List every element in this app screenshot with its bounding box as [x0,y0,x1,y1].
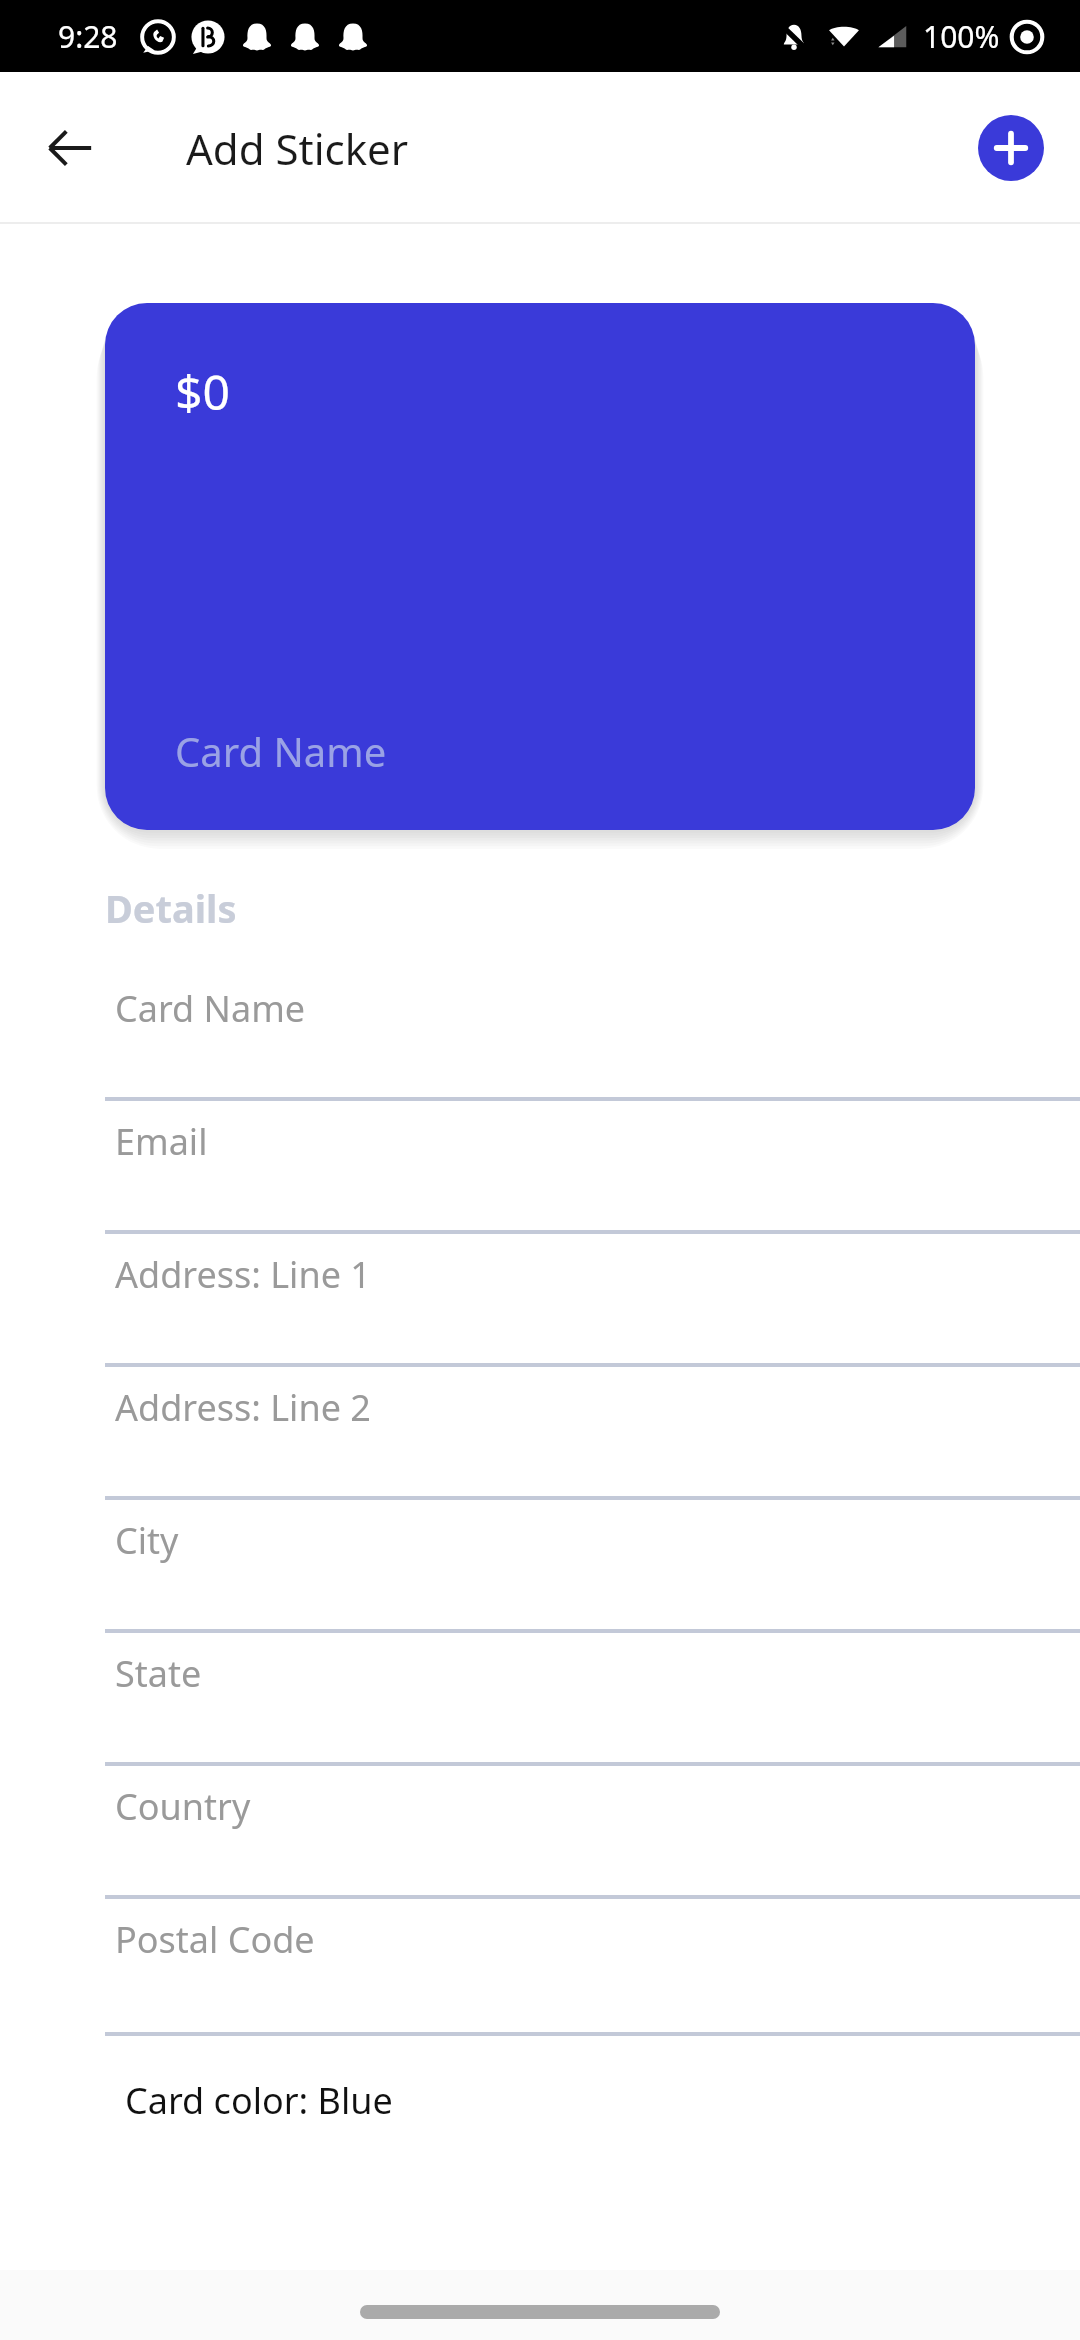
staticText: 9:28 [58,16,118,57]
staticText: $0 [175,359,230,424]
staticText: Address: Line 2 [115,1383,371,1432]
staticText: Card Name [115,984,306,1033]
button[interactable]: Add [978,115,1044,181]
button[interactable]: Card Name [0,968,1080,1101]
button[interactable]: State [0,1633,1080,1766]
button[interactable]: Card color: Blue [125,2076,393,2125]
staticText: State [115,1649,202,1698]
button[interactable]: Address: Line 2 [0,1367,1080,1500]
button[interactable]: City [0,1500,1080,1633]
staticText: Postal Code [115,1915,315,1964]
button[interactable]: Email [0,1101,1080,1234]
staticText: Add Sticker [186,120,409,177]
staticText: 100% [923,16,1000,57]
button[interactable]: Country [0,1766,1080,1899]
staticText: City [115,1516,179,1565]
staticText: Email [115,1117,208,1166]
staticText: Address: Line 1 [115,1250,371,1299]
staticText: Country [115,1782,251,1831]
button[interactable]: Postal Code [0,1899,1080,2036]
staticText: Details [105,882,237,934]
button[interactable]: Back [28,106,112,190]
staticText: Card Name [175,724,387,778]
button[interactable]: $0 [105,303,975,830]
button[interactable]: Address: Line 1 [0,1234,1080,1367]
